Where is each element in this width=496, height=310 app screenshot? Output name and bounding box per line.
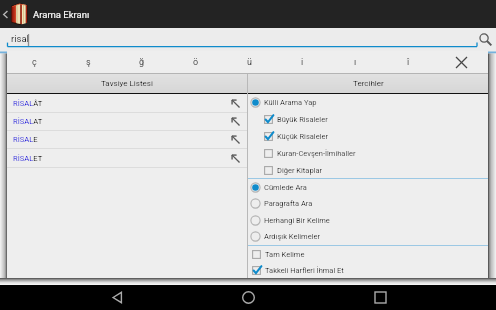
button[interactable]: Home: [233, 285, 263, 310]
button[interactable]: ş: [61, 51, 115, 73]
button[interactable]: ı: [329, 51, 382, 73]
button[interactable]: Büyük Risaleler: [248, 111, 488, 128]
staticText: i: [301, 57, 304, 68]
staticText: ğ: [139, 57, 145, 68]
button[interactable]: ç: [7, 51, 61, 73]
staticText: Paragrafta Ara: [264, 199, 313, 208]
staticText: Tercihler: [353, 79, 384, 88]
button[interactable]: î: [382, 51, 435, 73]
button[interactable]: Küçük Risaleler: [248, 128, 488, 145]
staticText: Külli Arama Yap: [264, 98, 317, 107]
button[interactable]: Clear: [435, 51, 488, 73]
staticText: Herhangi Bir Kelime: [264, 216, 330, 225]
button[interactable]: Ardışık Kelimeler: [248, 228, 488, 245]
button[interactable]: RİSALÂT: [7, 94, 247, 113]
button[interactable]: ö: [169, 51, 223, 73]
button[interactable]: RİSALAT: [7, 113, 247, 131]
button[interactable]: Külli Arama Yap: [248, 94, 488, 111]
staticText: ç: [32, 57, 37, 68]
button[interactable]: Herhangi Bir Kelime: [248, 212, 488, 228]
staticText: ü: [247, 57, 252, 68]
staticText: risal: [11, 33, 29, 44]
button[interactable]: RİSALET: [7, 149, 247, 168]
button[interactable]: Kuran-Cevşen-İlmihaller: [248, 145, 488, 162]
button[interactable]: Paragrafta Ara: [248, 195, 488, 212]
staticText: Arama Ekranı: [33, 9, 90, 20]
button[interactable]: Recent apps: [365, 285, 395, 310]
staticText: ş: [86, 57, 91, 68]
staticText: Tam Kelime: [265, 250, 305, 259]
staticText: Tavsiye Listesi: [101, 79, 153, 88]
staticText: Ardışık Kelimeler: [264, 232, 320, 241]
staticText: Cümlede Ara: [264, 183, 307, 192]
button[interactable]: Search: [477, 31, 493, 47]
button[interactable]: Tam Kelime: [248, 246, 488, 263]
staticText: Kuran-Cevşen-İlmihaller: [277, 149, 356, 158]
staticText: Büyük Risaleler: [277, 115, 328, 124]
staticText: Diğer Kitaplar: [277, 166, 323, 175]
button[interactable]: ü: [223, 51, 276, 73]
button[interactable]: Takkeli Harfleri İhmal Et: [248, 263, 488, 278]
button[interactable]: Back: [102, 285, 132, 310]
staticText: RİSALAT: [13, 117, 43, 126]
button[interactable]: Cümlede Ara: [248, 179, 488, 195]
button[interactable]: ğ: [115, 51, 169, 73]
button[interactable]: i: [276, 51, 329, 73]
staticText: î: [407, 57, 410, 68]
button[interactable]: RİSALE: [7, 131, 247, 149]
staticText: ı: [354, 57, 357, 68]
button[interactable]: Back: [0, 0, 30, 28]
staticText: ö: [193, 57, 199, 68]
staticText: RİSALET: [13, 154, 43, 163]
button[interactable]: Diğer Kitaplar: [248, 162, 488, 178]
staticText: RİSALE: [13, 135, 38, 144]
staticText: Küçük Risaleler: [277, 132, 329, 141]
staticText: Takkeli Harfleri İhmal Et: [265, 266, 344, 275]
staticText: RİSALÂT: [13, 99, 43, 108]
